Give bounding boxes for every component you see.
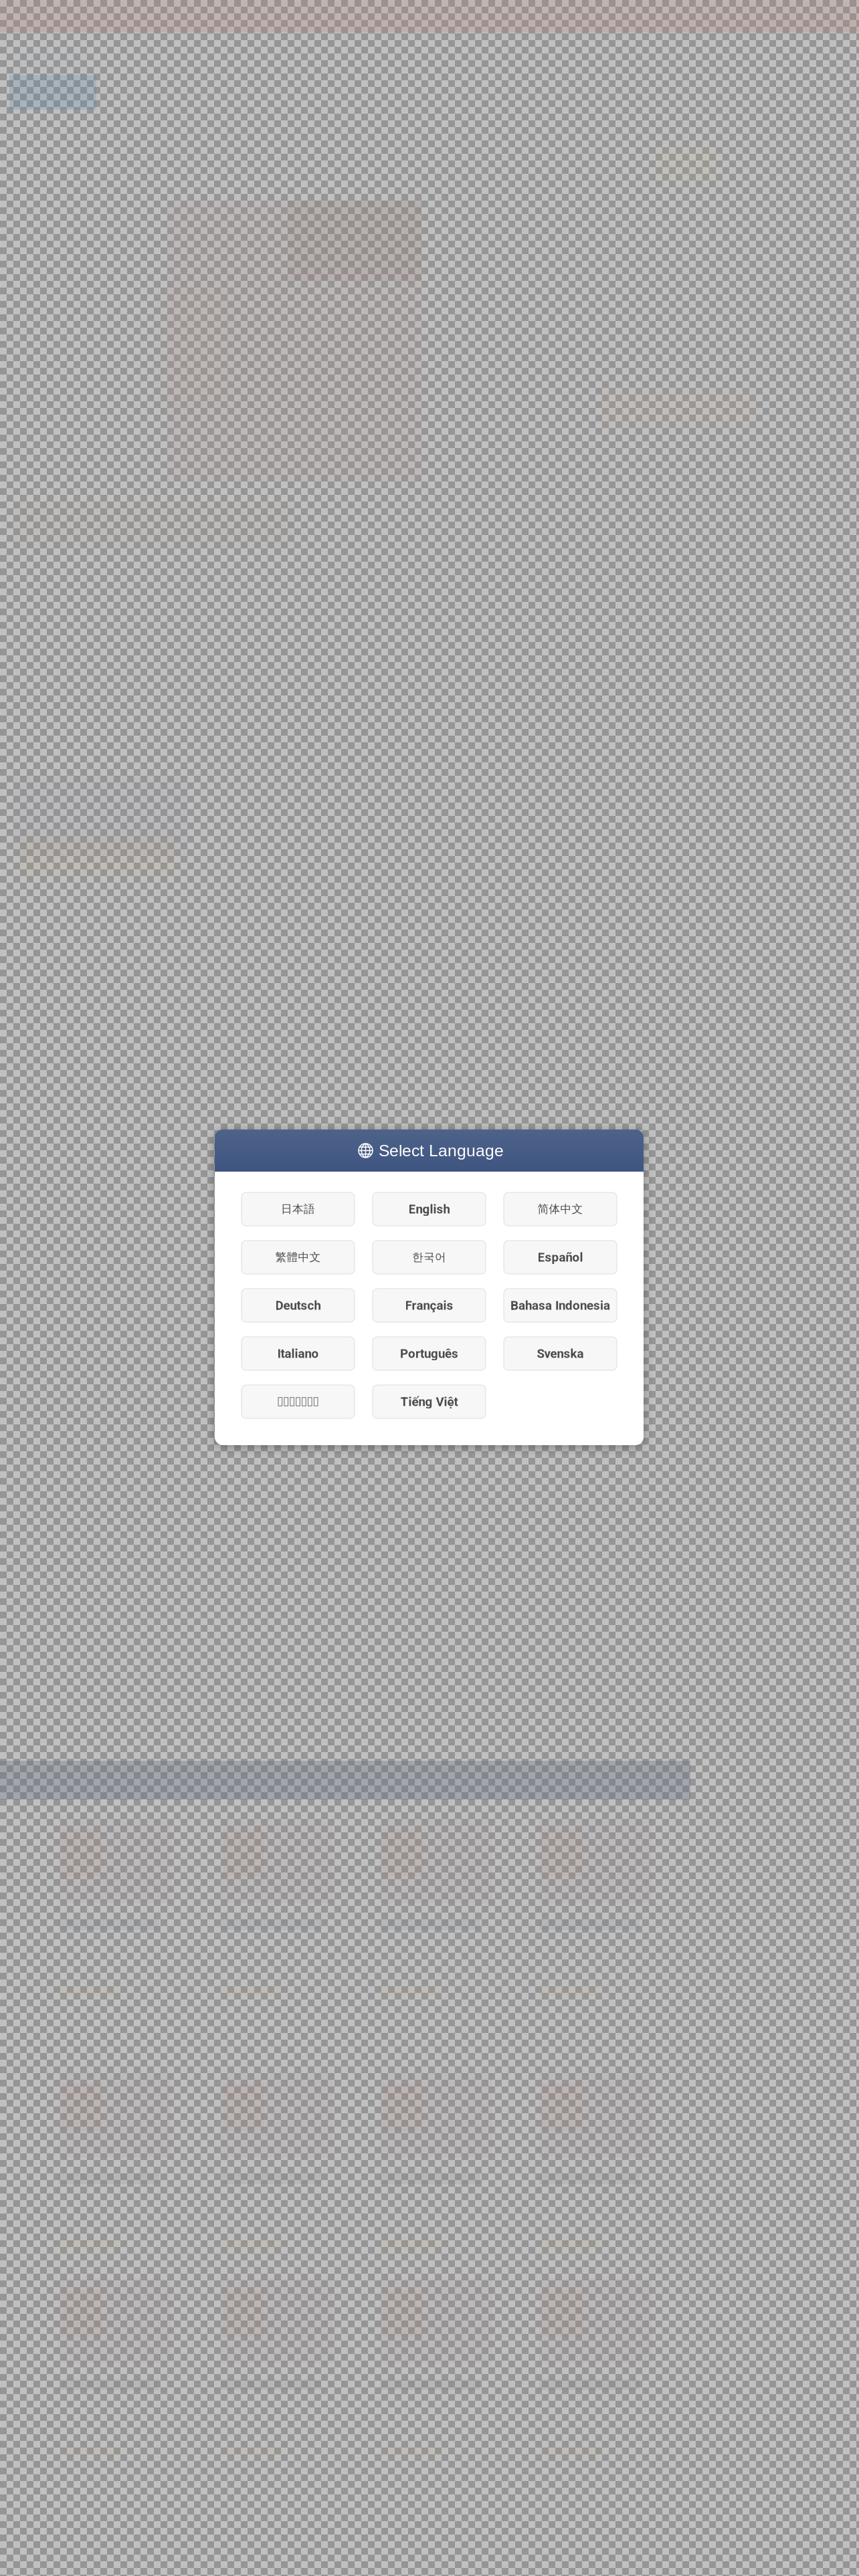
staticText: Deutsch (275, 1298, 321, 1313)
button[interactable]: Bahasa Indonesia (504, 1289, 617, 1322)
staticText: 日本語 (281, 1202, 315, 1216)
button[interactable]: Svenska (504, 1337, 617, 1370)
button[interactable]: Deutsch (242, 1289, 355, 1322)
button[interactable]: 한국어 (373, 1241, 486, 1274)
button[interactable]: Italiano (242, 1337, 355, 1370)
button[interactable]: Português (373, 1337, 486, 1370)
button[interactable]: 简体中文 (504, 1192, 617, 1226)
staticText: Italiano (277, 1346, 319, 1361)
staticText: Select Language (379, 1141, 504, 1160)
staticText: Svenska (537, 1346, 584, 1361)
button[interactable]: 繁體中文 (242, 1241, 355, 1274)
button[interactable]: Tiếng Việt (373, 1385, 486, 1418)
staticText: Español (538, 1250, 583, 1265)
staticText: 한국어 (412, 1250, 446, 1264)
staticText: Tiếng Việt (400, 1394, 458, 1409)
button[interactable]: English (373, 1192, 486, 1226)
staticText: Français (405, 1298, 453, 1313)
button[interactable]: Español (504, 1241, 617, 1274)
staticText: 繁體中文 (275, 1250, 321, 1264)
staticText: Português (400, 1346, 458, 1361)
button[interactable]: Français (373, 1289, 486, 1322)
staticText: Bahasa Indonesia (510, 1298, 610, 1313)
button[interactable]: Thai (242, 1385, 355, 1418)
staticText: 简体中文 (538, 1202, 583, 1216)
staticText: English (408, 1202, 450, 1216)
button[interactable]: 日本語 (242, 1192, 355, 1226)
